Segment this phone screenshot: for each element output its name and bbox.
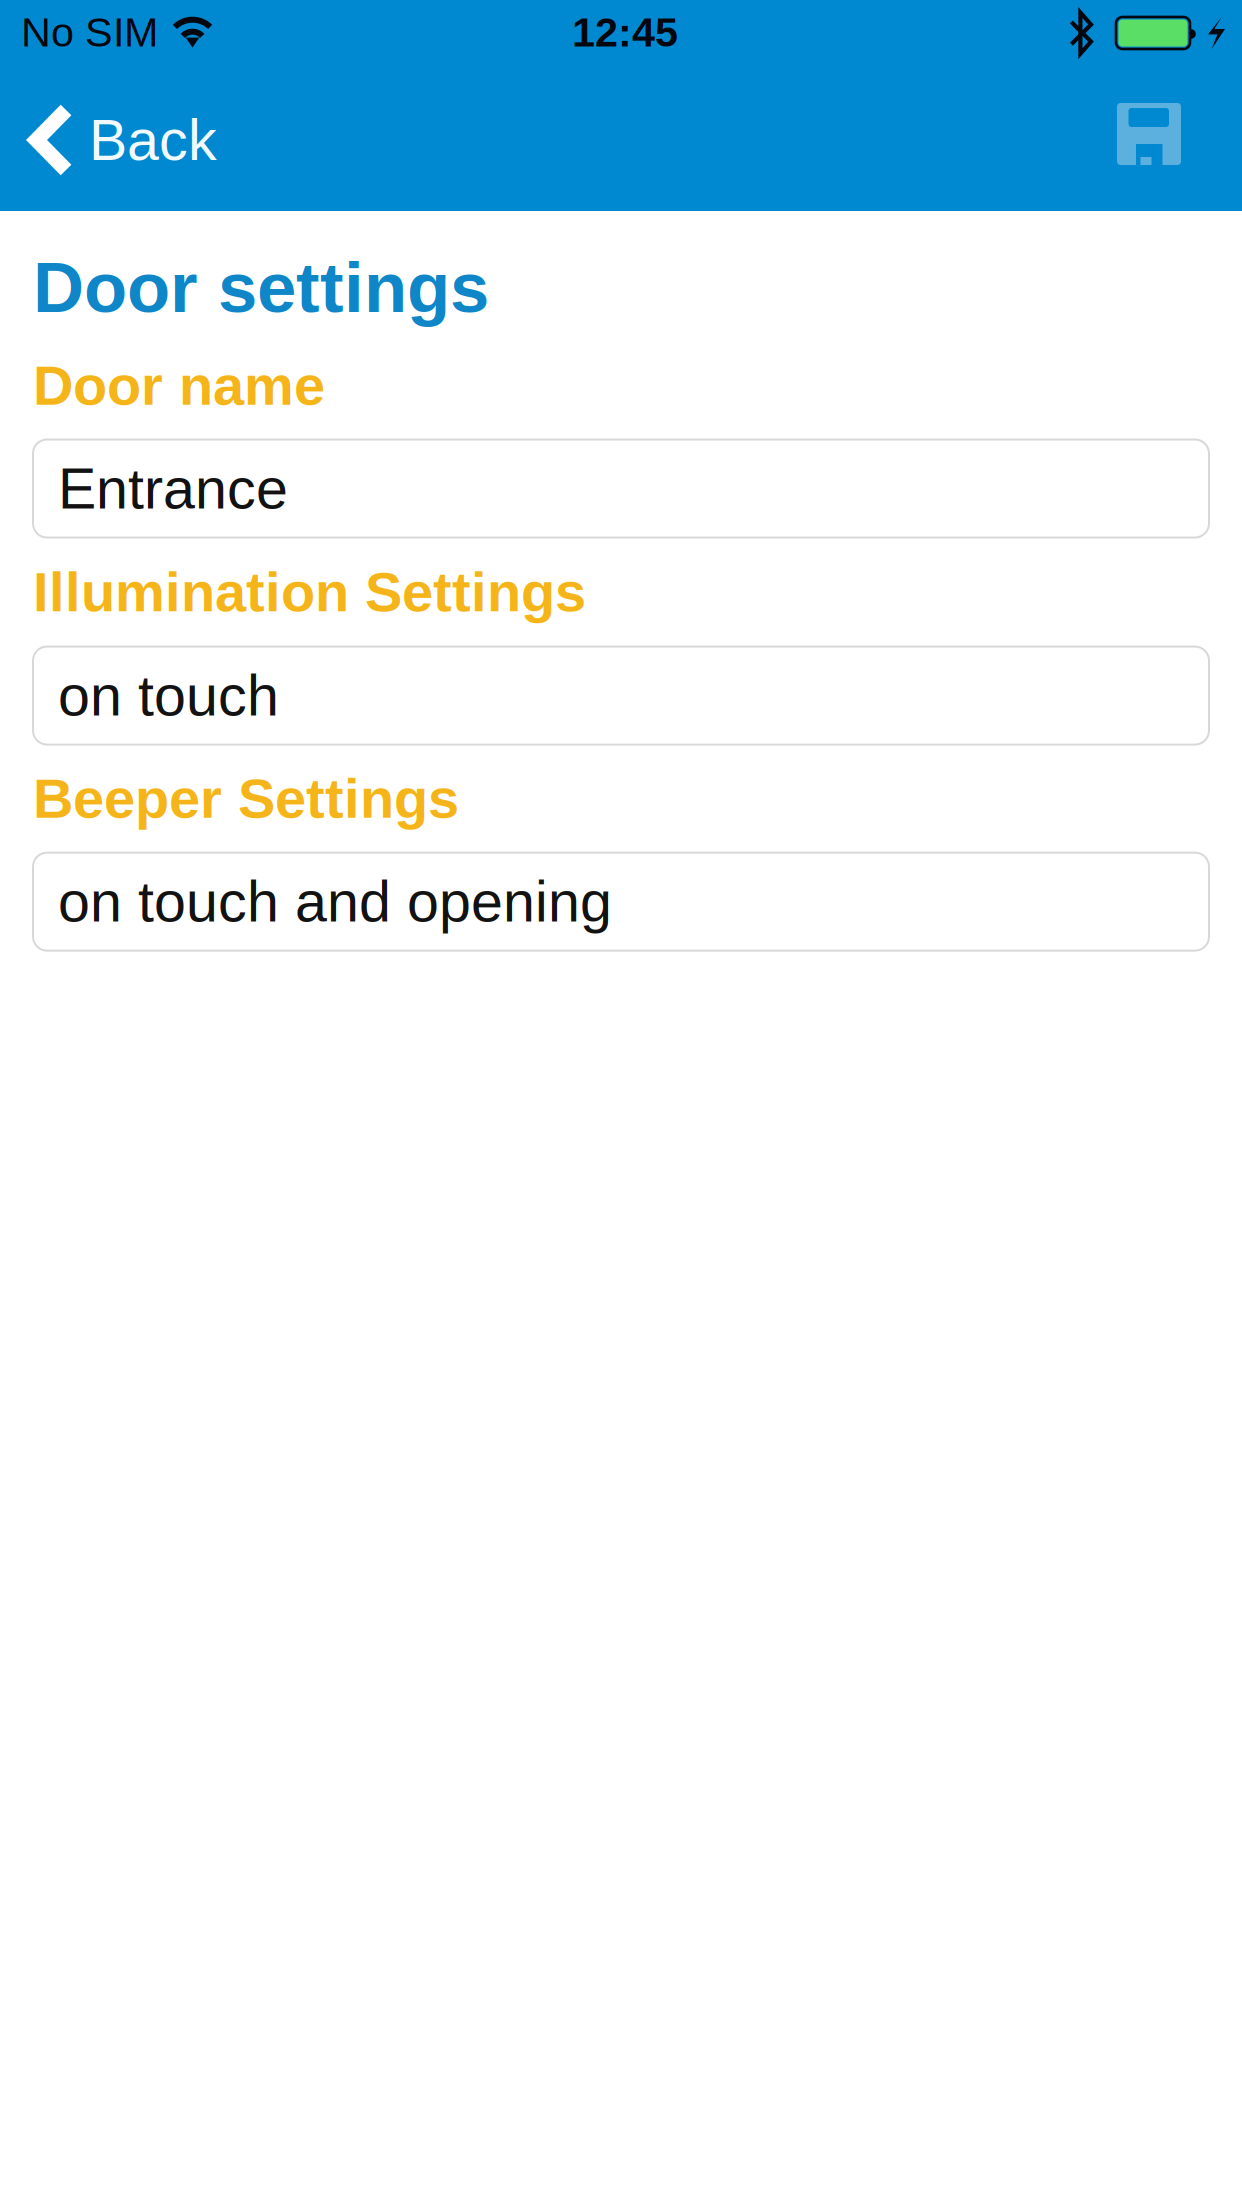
staticText: Back	[89, 108, 217, 172]
staticText: Entrance	[58, 456, 288, 521]
staticText: Door settings	[33, 248, 489, 327]
button[interactable]: on touch and opening	[33, 853, 1209, 951]
button[interactable]: on touch	[33, 647, 1209, 745]
staticText: Beeper Settings	[33, 767, 459, 830]
button[interactable]: Entrance	[33, 439, 1209, 537]
button[interactable]: Save	[1077, 70, 1242, 206]
staticText: Door name	[33, 354, 325, 416]
staticText: on touch and opening	[58, 870, 612, 934]
button[interactable]: Back	[0, 70, 247, 211]
staticText: 12:45	[572, 9, 678, 55]
staticText: No SIM	[21, 9, 158, 55]
staticText: Illumination Settings	[33, 560, 586, 623]
staticText: on touch	[58, 663, 279, 728]
